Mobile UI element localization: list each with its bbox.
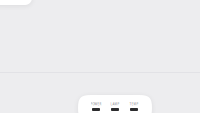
staticText: TEMP <box>129 102 138 106</box>
button[interactable]: POWER <box>86 95 105 113</box>
staticText: POWER <box>90 102 101 106</box>
button[interactable]: LAMP <box>105 95 124 113</box>
button[interactable]: TEMP <box>124 95 143 113</box>
staticText: LAMP <box>110 102 119 106</box>
